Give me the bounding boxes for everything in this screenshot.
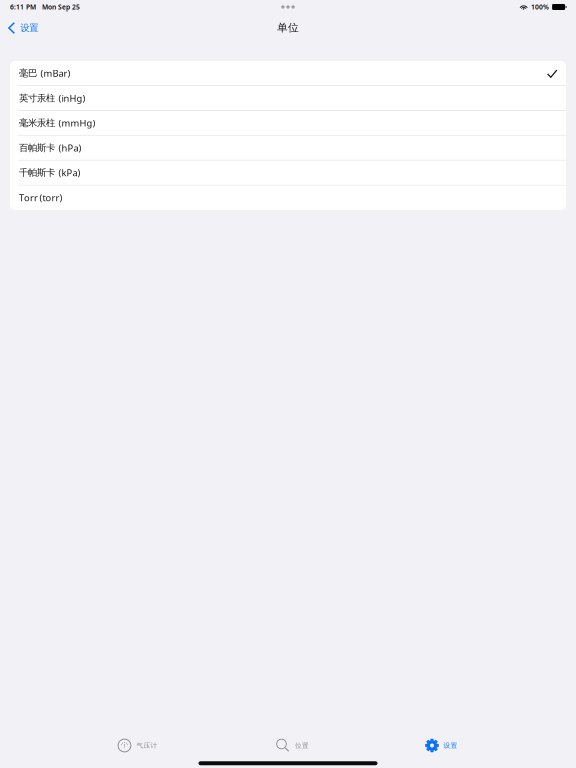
staticText: 气压计 <box>136 741 157 750</box>
button[interactable]: 英寸汞柱 <box>10 86 566 110</box>
button[interactable]: 返回 设置 <box>0 15 44 39</box>
button[interactable]: 百帕斯卡 <box>10 136 566 160</box>
button[interactable]: Torr <box>10 185 566 210</box>
staticText: (inHg) <box>58 92 85 104</box>
staticText: (mmHg) <box>58 117 95 129</box>
staticText: 设置 <box>443 741 457 750</box>
staticText: 6:11 PM Mon Sep 25 <box>10 3 80 11</box>
staticText: 设置 <box>20 22 38 34</box>
staticText: 单位 <box>277 21 299 34</box>
staticText: (torr) <box>39 191 62 204</box>
staticText: (mBar) <box>40 67 70 79</box>
staticText: (kPa) <box>58 166 80 179</box>
staticText: 毫米汞柱 <box>19 117 55 129</box>
button[interactable]: 毫巴 <box>10 61 566 85</box>
button[interactable]: 毫米汞柱 <box>10 111 566 135</box>
button[interactable]: 气压计 <box>114 732 161 758</box>
staticText: Torr <box>19 191 38 204</box>
staticText: 英寸汞柱 <box>19 92 55 104</box>
staticText: 百帕斯卡 <box>19 142 55 154</box>
button[interactable]: 设置 <box>421 732 462 758</box>
button[interactable]: 千帕斯卡 <box>10 161 566 185</box>
button[interactable]: 位置 <box>272 732 313 758</box>
staticText: (hPa) <box>58 142 81 154</box>
staticText: 毫巴 <box>19 67 37 79</box>
staticText: 千帕斯卡 <box>19 167 55 178</box>
staticText: 100% <box>531 3 549 11</box>
staticText: 位置 <box>295 741 309 750</box>
